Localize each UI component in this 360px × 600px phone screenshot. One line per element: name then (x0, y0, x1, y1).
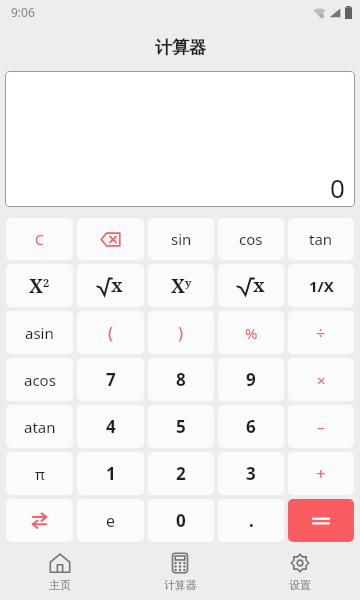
staticText: 2 (176, 462, 186, 485)
button[interactable]: 计算器 (120, 544, 240, 600)
staticText: 计算器 (155, 37, 206, 58)
button[interactable]: 6 (218, 405, 284, 448)
button[interactable]: tan (288, 218, 354, 260)
button[interactable]: Xy (148, 264, 214, 307)
staticText: + (316, 462, 326, 485)
button[interactable]: 9 (218, 358, 284, 401)
button[interactable]: 8 (148, 358, 214, 401)
staticText: 3 (246, 462, 256, 485)
button[interactable]: 主页 (0, 544, 120, 600)
staticText: 5 (176, 415, 186, 438)
staticText: 主页 (49, 578, 71, 592)
staticText: π (35, 464, 45, 484)
button[interactable]: 设置 (240, 544, 360, 600)
staticText: x (111, 273, 123, 298)
staticText: cos (239, 229, 263, 249)
staticText: – (317, 417, 325, 437)
button[interactable]: asin (6, 311, 73, 354)
staticText: ( (108, 321, 114, 344)
staticText: asin (25, 323, 54, 343)
button[interactable]: × (288, 358, 354, 401)
staticText: X2 (29, 273, 50, 299)
button[interactable]: ) (148, 311, 214, 354)
staticText: 7 (106, 368, 116, 391)
button[interactable]: + (288, 452, 354, 495)
staticText: 0 (330, 170, 345, 205)
staticText: 9 (246, 368, 256, 391)
staticText: 设置 (289, 578, 311, 592)
button[interactable]: cos (218, 218, 284, 260)
staticText: 1/X (309, 276, 334, 296)
button[interactable]: . (218, 499, 284, 542)
staticText: 9:06 (11, 4, 35, 20)
button[interactable]: Backspace (77, 218, 144, 260)
staticText: e (106, 510, 116, 532)
staticText: . (249, 509, 254, 532)
staticText: 1 (106, 462, 116, 485)
button[interactable]: x (77, 264, 144, 307)
staticText: ) (178, 321, 184, 344)
staticText: acos (24, 370, 56, 390)
staticText: 计算器 (164, 578, 197, 592)
button[interactable]: 0 (148, 499, 214, 542)
button[interactable]: 2 (148, 452, 214, 495)
staticText: atan (24, 417, 56, 437)
button[interactable]: – (288, 405, 354, 448)
button[interactable] (288, 499, 354, 542)
button[interactable]: % (218, 311, 284, 354)
button[interactable]: C (6, 218, 73, 260)
staticText: 0 (176, 509, 186, 532)
staticText: Xy (171, 273, 192, 299)
button[interactable]: 1/X (288, 264, 354, 307)
staticText: 6 (246, 415, 256, 438)
staticText: 4 (106, 415, 116, 438)
button[interactable]: acos (6, 358, 73, 401)
staticText: tan (309, 229, 333, 249)
button[interactable]: Swap (6, 499, 73, 542)
button[interactable]: x (218, 264, 284, 307)
button[interactable]: atan (6, 405, 73, 448)
staticText: C (35, 230, 44, 249)
staticText: 8 (176, 368, 186, 391)
staticText: sin (171, 229, 192, 249)
button[interactable]: 1 (77, 452, 144, 495)
button[interactable]: 7 (77, 358, 144, 401)
staticText: % (245, 323, 258, 343)
staticText: × (317, 370, 326, 390)
button[interactable]: ( (77, 311, 144, 354)
button[interactable]: e (77, 499, 144, 542)
button[interactable]: 5 (148, 405, 214, 448)
button[interactable]: π (6, 452, 73, 495)
button[interactable]: 3 (218, 452, 284, 495)
staticText: x (253, 273, 265, 298)
button[interactable]: ÷ (288, 311, 354, 354)
button[interactable]: X2 (6, 264, 73, 307)
button[interactable]: sin (148, 218, 214, 260)
button[interactable]: 4 (77, 405, 144, 448)
staticText: ÷ (316, 322, 326, 344)
